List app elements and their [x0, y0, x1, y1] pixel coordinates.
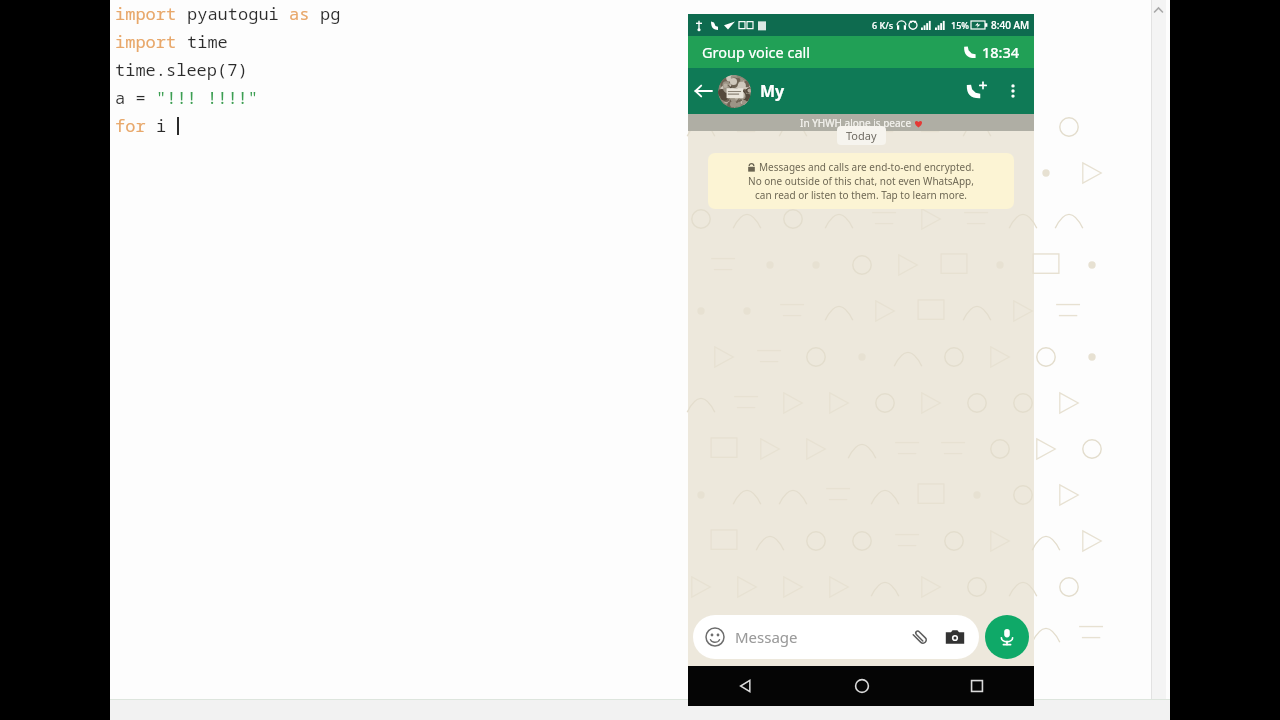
button[interactable]: Emoji: [693, 615, 979, 659]
staticText: 15%: [951, 19, 969, 31]
staticText: a =: [115, 86, 156, 109]
staticText: Group voice call: [702, 42, 811, 62]
button[interactable]: Messages and calls are end-to-end encryp…: [708, 153, 1014, 209]
staticText: pyautogui: [187, 2, 289, 25]
staticText: Message: [735, 627, 798, 647]
staticText: pg: [320, 2, 341, 25]
staticText: can read or listen to them. Tap to learn…: [755, 188, 967, 202]
staticText: 8:40 AM: [991, 18, 1030, 32]
staticText: "!!! !!!!": [156, 86, 258, 109]
staticText: Messages and calls are end-to-end encryp…: [759, 160, 975, 174]
staticText: i: [156, 114, 177, 137]
staticText: as: [289, 2, 320, 25]
staticText: In YHWH alone is peace: [800, 116, 912, 130]
button[interactable]: Add participant to call: [958, 72, 996, 110]
button[interactable]: More options: [996, 74, 1030, 108]
staticText: My: [760, 80, 785, 102]
staticText: time: [187, 30, 228, 53]
button[interactable]: Back: [688, 666, 804, 706]
button[interactable]: My: [718, 68, 958, 114]
staticText: 6 K/s: [872, 19, 894, 31]
button[interactable]: Record voice message: [985, 615, 1029, 659]
button[interactable]: Recent apps: [919, 666, 1034, 706]
button[interactable]: Camera: [942, 624, 968, 650]
staticText: time.sleep(7): [115, 58, 248, 81]
button[interactable]: Home: [804, 666, 919, 706]
staticText: 18:34: [982, 42, 1020, 62]
button[interactable]: Emoji: [704, 626, 726, 648]
button[interactable]: Group voice call: [688, 36, 1034, 68]
staticText: for: [115, 114, 156, 137]
staticText: Today: [846, 128, 877, 143]
button[interactable]: Attach: [907, 624, 933, 650]
button[interactable]: Back: [688, 76, 718, 106]
staticText: import: [115, 2, 187, 25]
staticText: import: [115, 30, 187, 53]
staticText: No one outside of this chat, not even Wh…: [748, 174, 974, 188]
